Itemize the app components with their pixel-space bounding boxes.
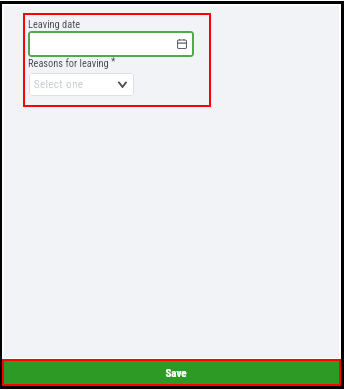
staticText: Select one bbox=[34, 78, 84, 90]
other: Choose leaving date bbox=[177, 39, 187, 49]
button[interactable]: Select one bbox=[29, 73, 134, 96]
button[interactable]: Choose leaving date bbox=[28, 31, 194, 57]
staticText: Leaving date bbox=[28, 18, 81, 30]
staticText: Reasons for leaving * bbox=[28, 55, 116, 69]
staticText: Save bbox=[165, 367, 187, 380]
button[interactable]: Save bbox=[4, 361, 339, 384]
